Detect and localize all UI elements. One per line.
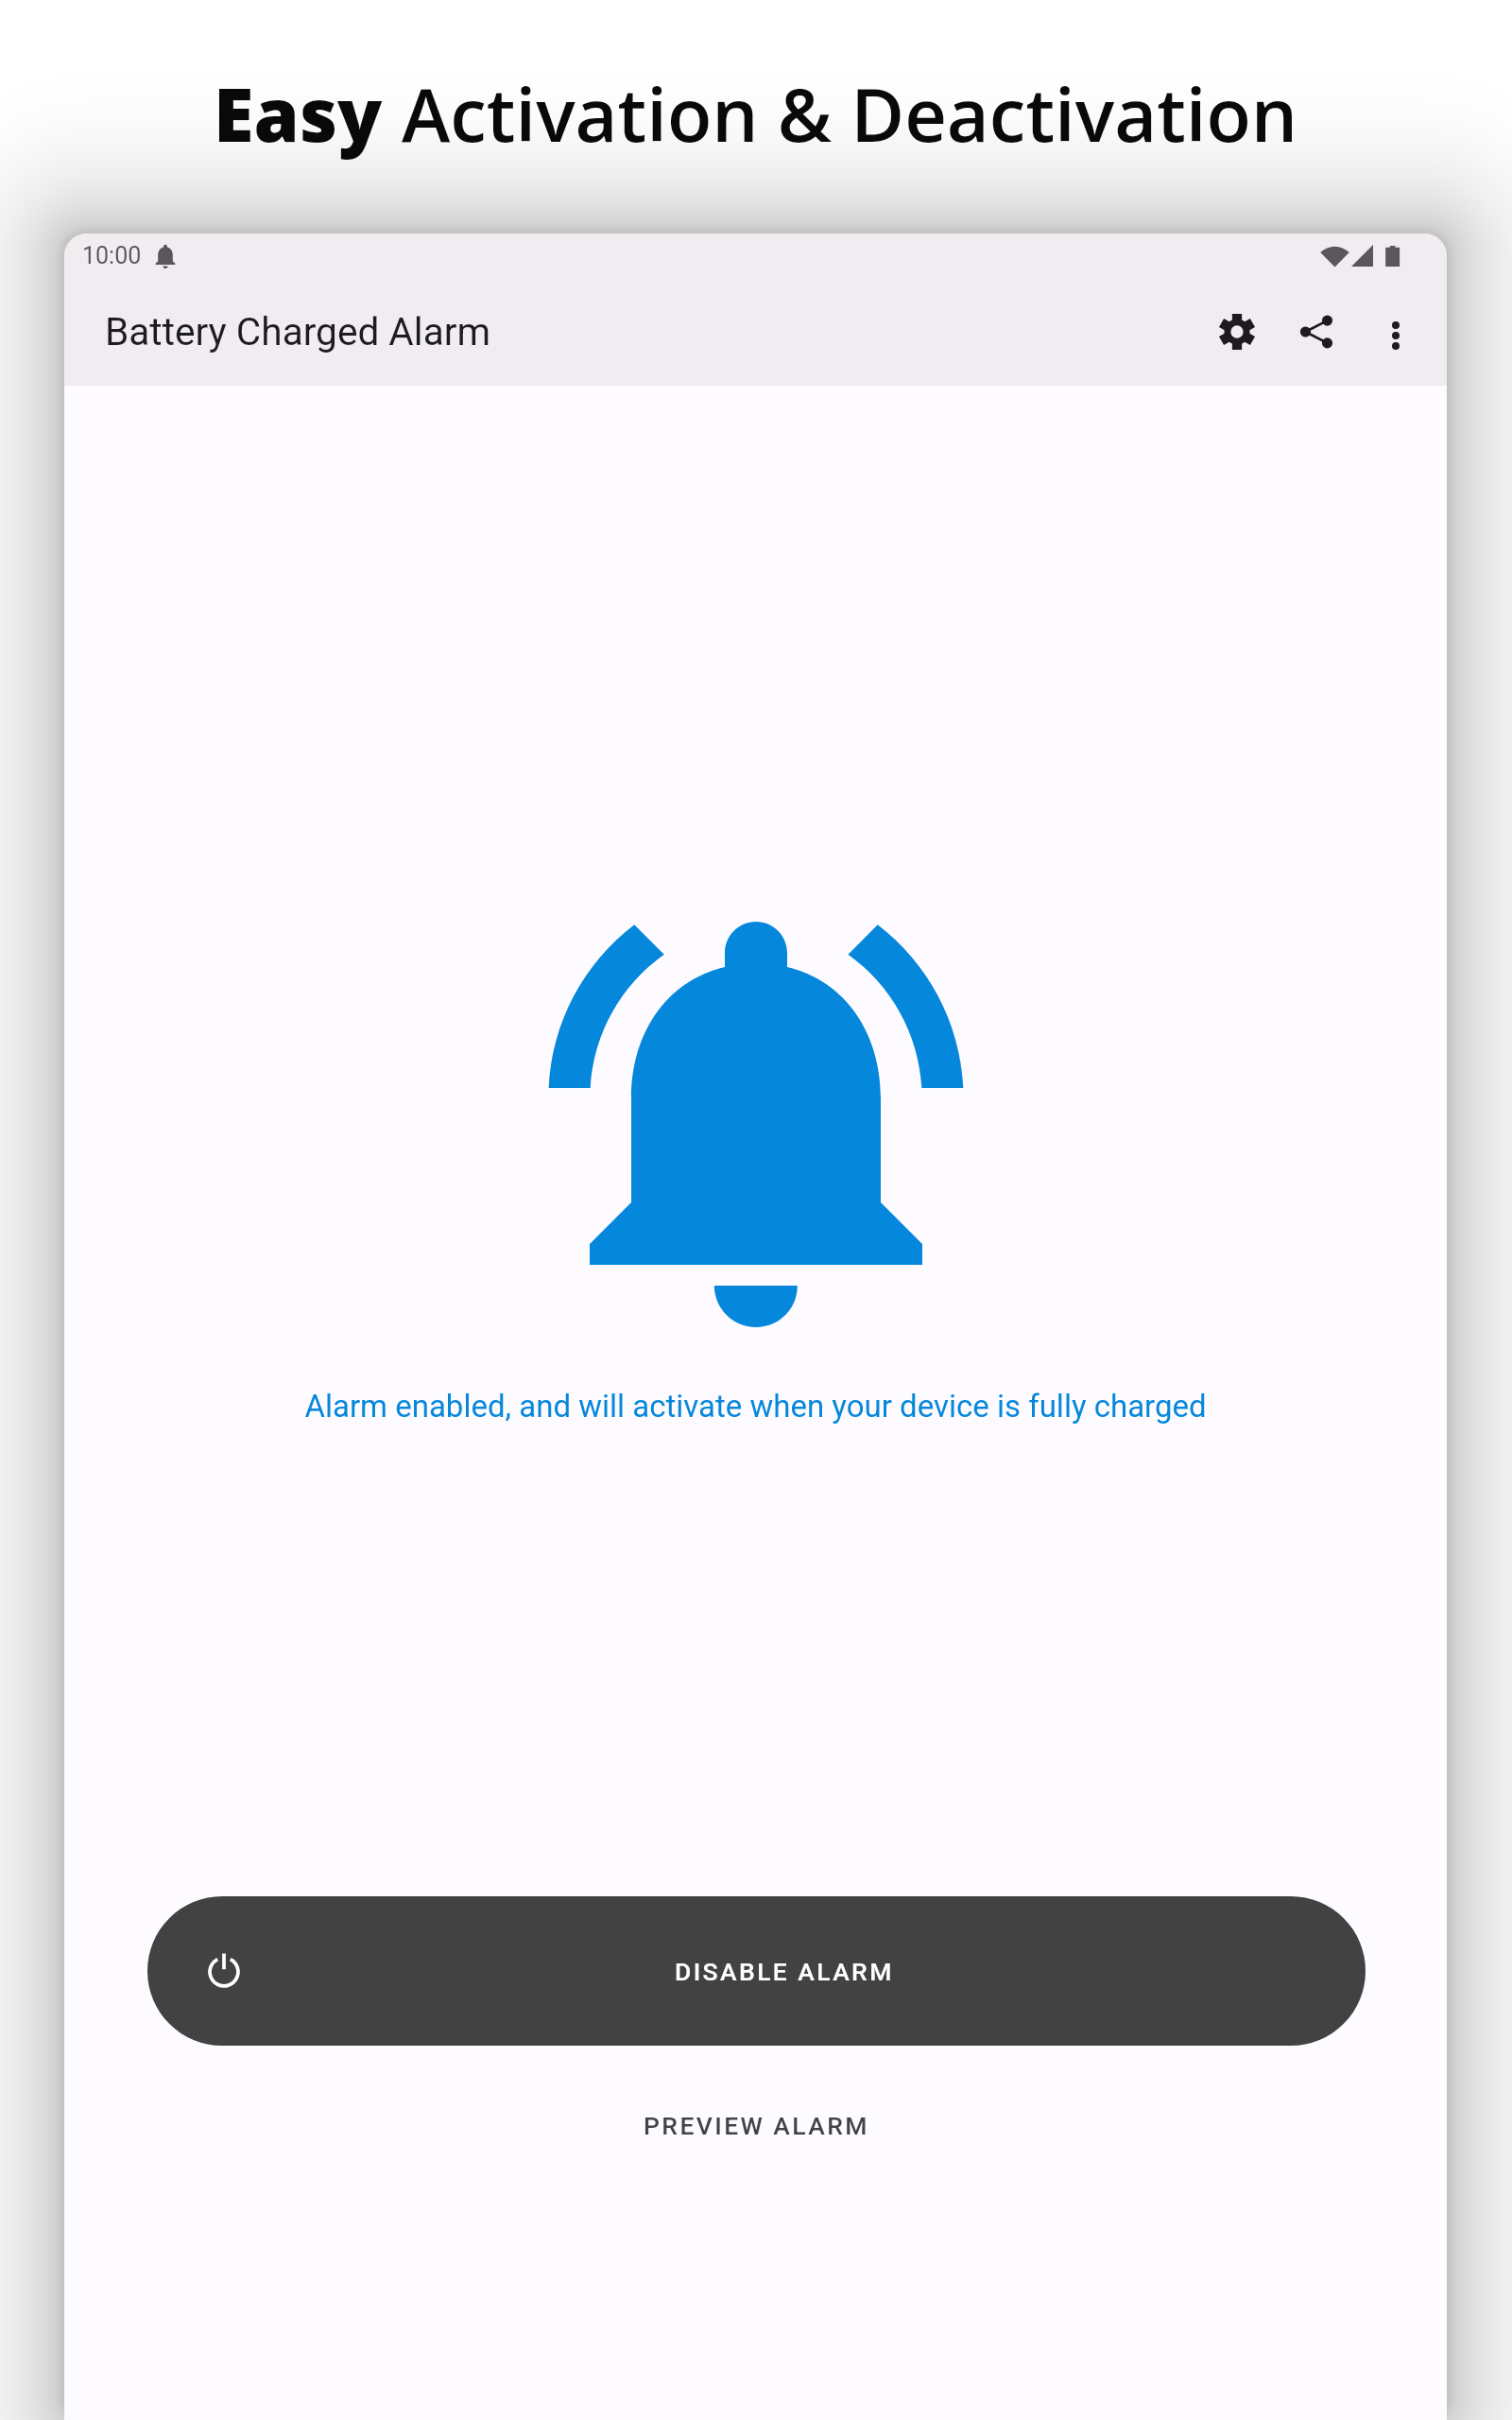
staticText: DISABLE ALARM	[675, 1957, 894, 1986]
staticText: PREVIEW ALARM	[644, 2111, 869, 2140]
button[interactable]: DISABLE ALARM	[147, 1896, 1366, 2046]
button[interactable]: More options	[1356, 292, 1435, 372]
button[interactable]: Share	[1277, 292, 1356, 372]
staticText: Activation & Deactivation	[402, 63, 1298, 164]
staticText: Easy	[214, 63, 402, 164]
staticText: Alarm enabled, and will activate when yo…	[64, 1388, 1447, 1425]
button[interactable]: Settings	[1197, 292, 1277, 372]
staticText: Battery Charged Alarm	[105, 309, 491, 354]
button[interactable]: PREVIEW ALARM	[147, 2076, 1366, 2174]
staticText: 10:00	[82, 242, 142, 269]
